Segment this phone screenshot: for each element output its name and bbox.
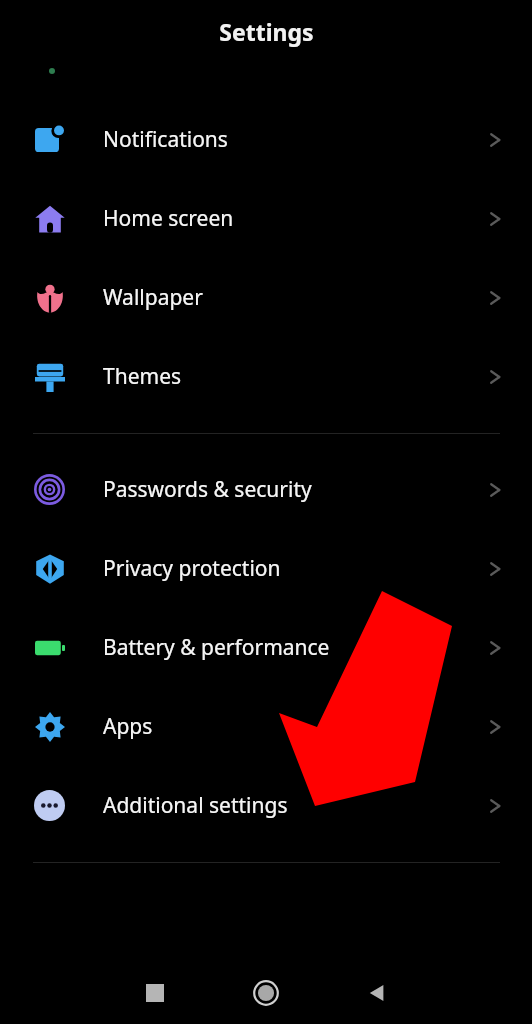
button[interactable]: Additional settings	[0, 766, 532, 845]
button[interactable]: Recent apps	[134, 972, 176, 1014]
button[interactable]: Themes	[0, 337, 532, 416]
button[interactable]: Wallpaper	[0, 258, 532, 337]
staticText: Wallpaper	[103, 283, 203, 312]
button[interactable]: Home	[244, 971, 288, 1015]
button[interactable]: Privacy protection	[0, 529, 532, 608]
button[interactable]: Back	[356, 972, 398, 1014]
button[interactable]: Passwords & security	[0, 450, 532, 529]
staticText: Passwords & security	[103, 475, 312, 504]
staticText: Home screen	[103, 204, 234, 233]
button[interactable]: Apps	[0, 687, 532, 766]
button[interactable]: Battery & performance	[0, 608, 532, 687]
staticText: Privacy protection	[103, 554, 281, 583]
button[interactable]: Home screen	[0, 179, 532, 258]
staticText: Apps	[103, 712, 153, 741]
staticText: Themes	[103, 362, 182, 391]
staticText: Additional settings	[103, 791, 288, 820]
staticText: Battery & performance	[103, 633, 330, 662]
staticText: Notifications	[103, 125, 228, 154]
button[interactable]: Notifications	[0, 100, 532, 179]
staticText: Settings	[219, 16, 314, 47]
